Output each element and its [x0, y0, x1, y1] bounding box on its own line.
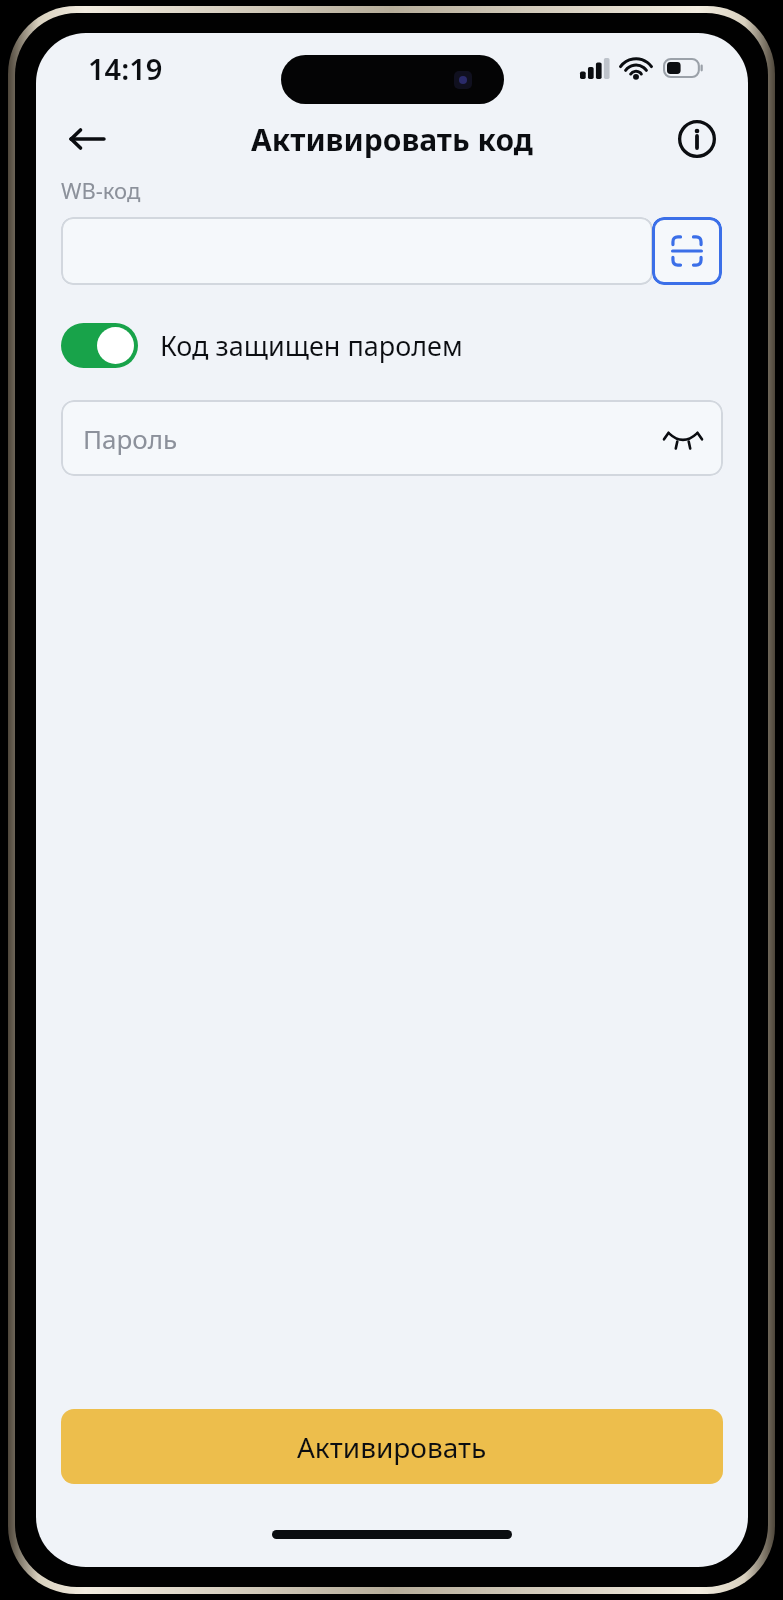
button[interactable]: Пароль — [61, 400, 723, 476]
button[interactable]: Активировать — [61, 1409, 723, 1484]
button[interactable]: Информация — [668, 110, 726, 168]
button[interactable]: Назад — [56, 108, 118, 170]
button[interactable] — [61, 217, 653, 285]
staticText: 14:19 — [88, 49, 163, 88]
staticText: Код защищен паролем — [160, 327, 463, 364]
button[interactable]: Показать пароль — [659, 414, 707, 462]
staticText: Активировать код — [251, 119, 533, 160]
staticText: Пароль — [83, 421, 178, 456]
staticText: Активировать — [297, 1428, 487, 1466]
staticText: WB-код — [61, 175, 141, 205]
button[interactable]: Код защищен паролем — [61, 323, 463, 368]
button[interactable]: Сканировать код — [652, 217, 722, 285]
